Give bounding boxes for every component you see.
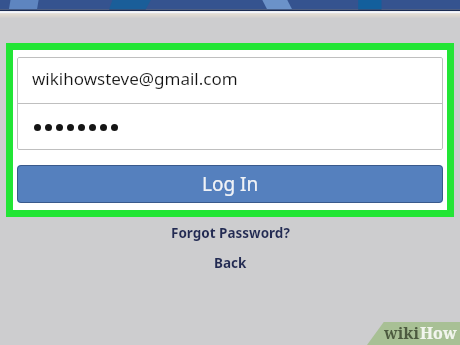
button[interactable]: Forgot Password? (165, 221, 296, 245)
button[interactable]: Password (17, 104, 443, 150)
staticText: Log In (202, 171, 259, 197)
button[interactable]: wikihowsteve@gmail.com (17, 57, 443, 103)
staticText: wikihowsteve@gmail.com (32, 67, 238, 90)
button[interactable]: Back (208, 251, 253, 275)
staticText: wiki (384, 322, 420, 344)
button[interactable]: Log In (17, 165, 443, 203)
staticText: How (420, 322, 457, 344)
